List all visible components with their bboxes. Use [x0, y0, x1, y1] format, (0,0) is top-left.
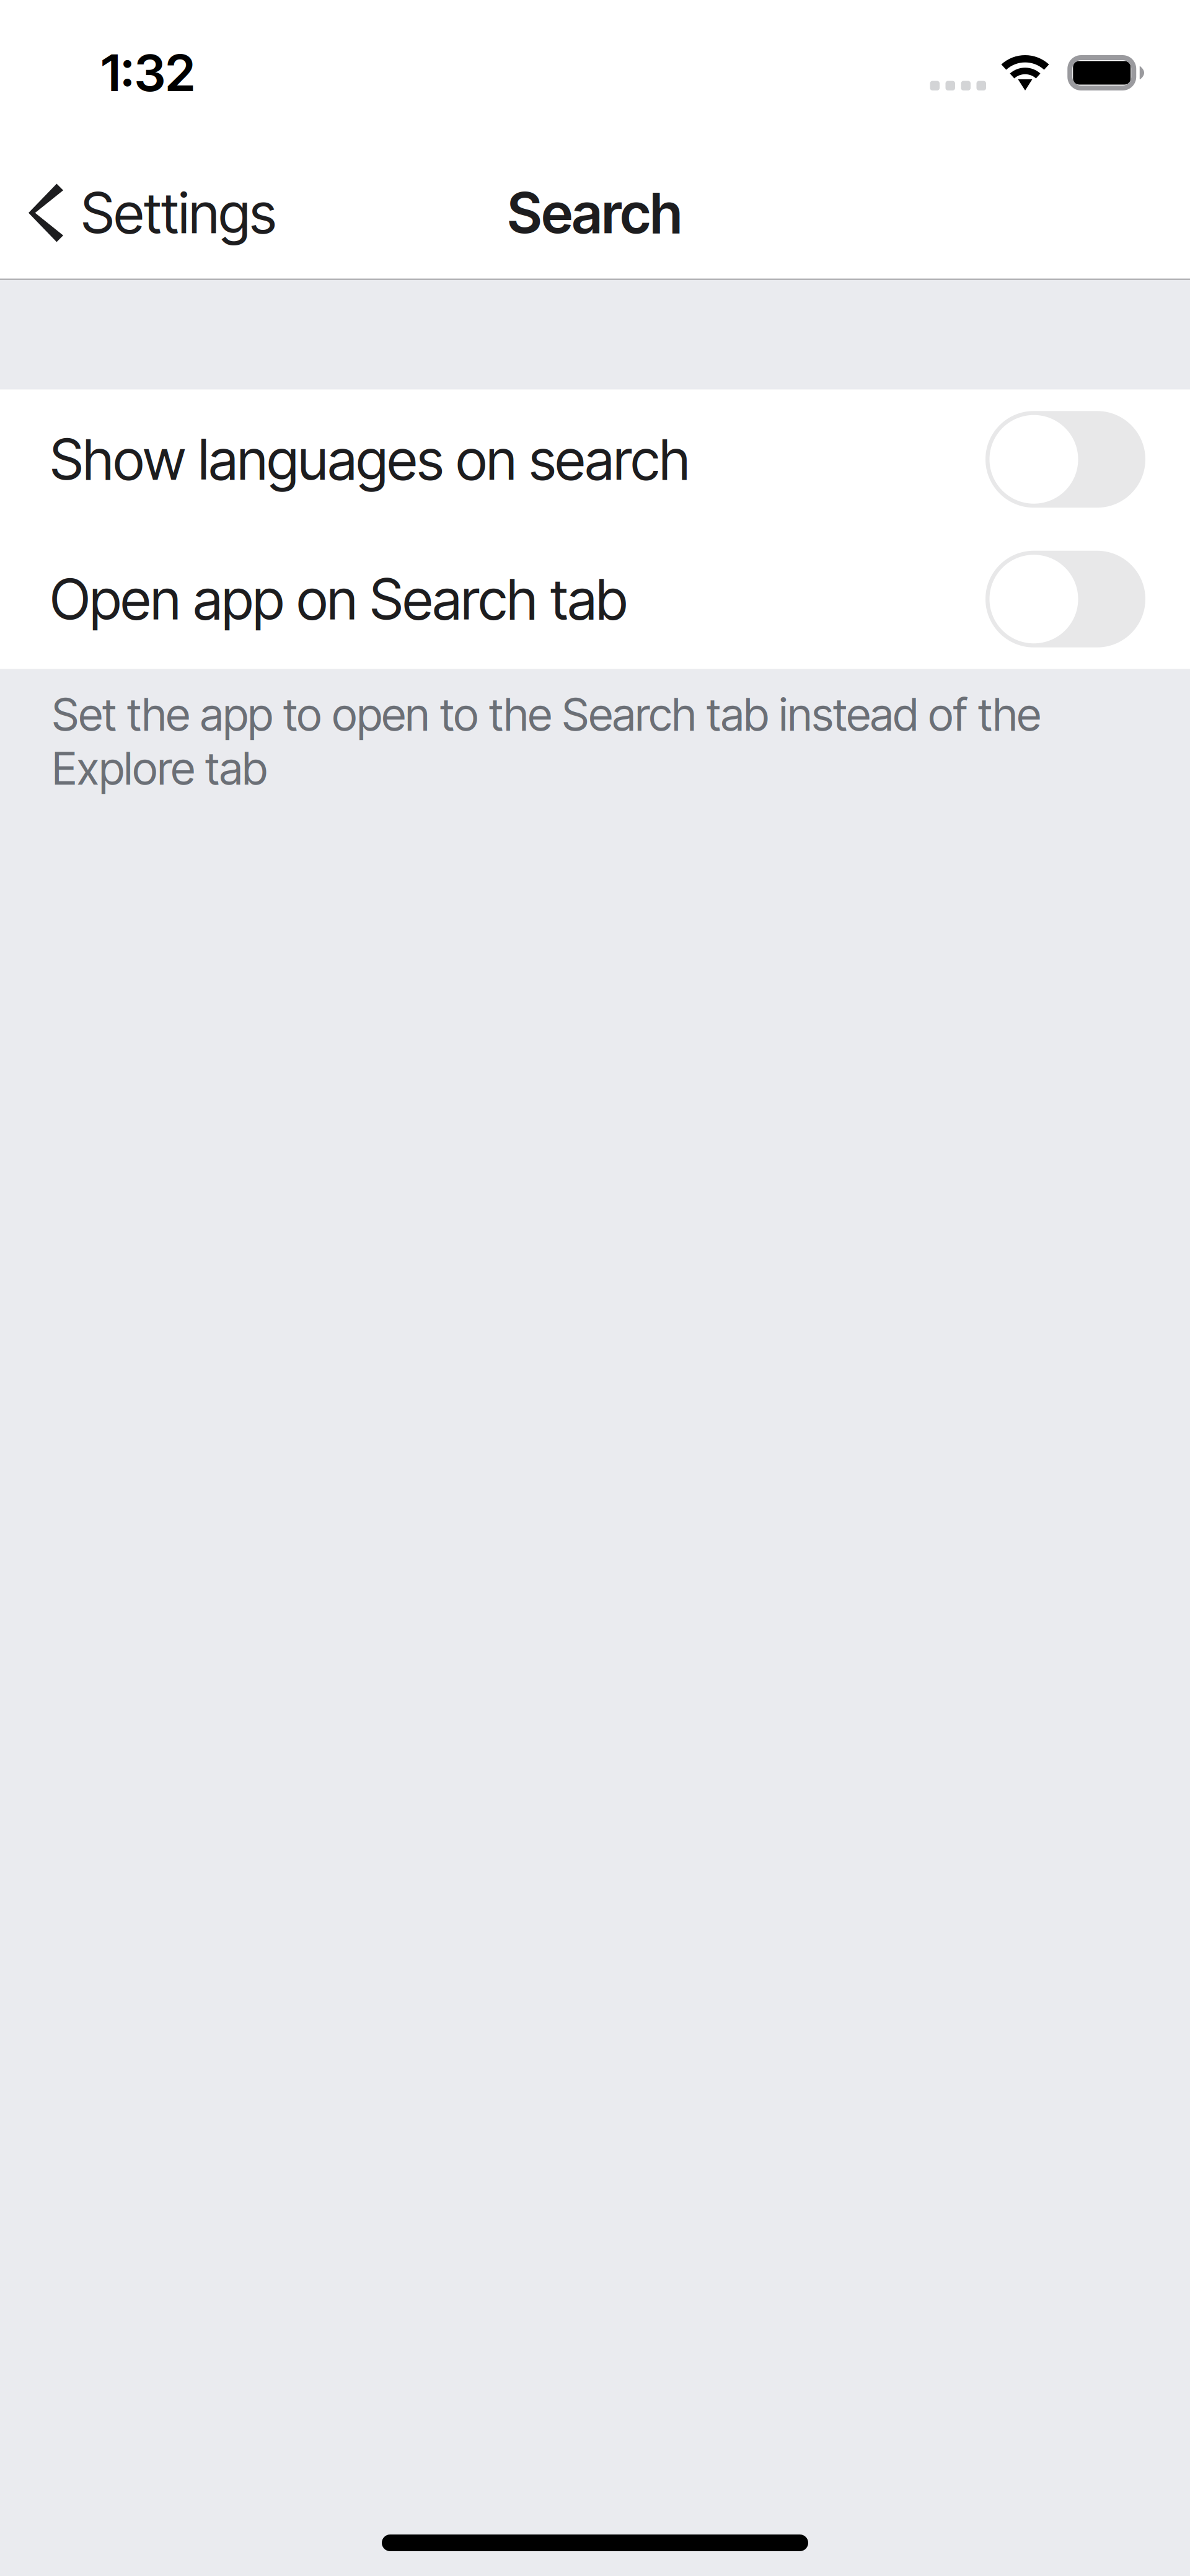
staticText: Show languages on search [50, 426, 690, 493]
button[interactable]: Show languages on search [0, 389, 1190, 529]
staticText: Settings [81, 179, 276, 246]
button[interactable]: Settings [0, 163, 294, 262]
staticText: Open app on Search tab [50, 566, 627, 633]
staticText: 1:32 [101, 42, 195, 103]
button[interactable]: Open app on Search tab [0, 529, 1190, 669]
staticText: Search [508, 179, 682, 246]
staticText: Set the app to open to the Search tab in… [52, 688, 1041, 795]
